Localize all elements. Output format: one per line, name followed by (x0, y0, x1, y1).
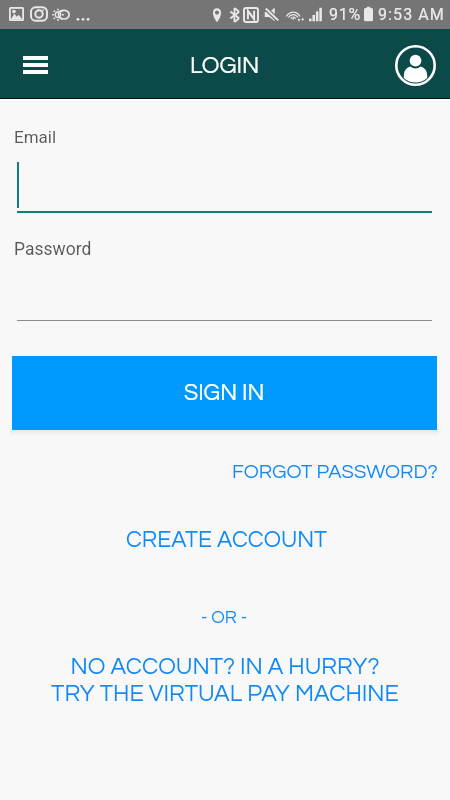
button[interactable]: Email (14, 124, 435, 214)
button[interactable]: Password (14, 236, 435, 321)
staticText: SIGN IN (184, 381, 265, 405)
button[interactable]: FORGOT PASSWORD? (232, 462, 438, 483)
staticText: 91% (329, 5, 361, 24)
staticText: FORGOT PASSWORD? (232, 462, 438, 483)
button[interactable]: SIGN IN (12, 356, 437, 430)
staticText: - OR - (201, 608, 248, 627)
button[interactable]: Open navigation menu (11, 40, 59, 88)
button[interactable]: CREATE ACCOUNT (126, 528, 328, 552)
button[interactable]: NO ACCOUNT? IN A HURRY? TRY THE VIRTUAL … (51, 655, 399, 706)
staticText: Password (14, 239, 92, 260)
staticText: 9:53 AM (378, 5, 445, 24)
staticText: Email (14, 127, 57, 147)
button[interactable]: Account (391, 41, 439, 89)
staticText: NO ACCOUNT? IN A HURRY? TRY THE VIRTUAL … (51, 655, 399, 706)
staticText: LOGIN (190, 54, 260, 78)
staticText: CREATE ACCOUNT (126, 528, 328, 552)
